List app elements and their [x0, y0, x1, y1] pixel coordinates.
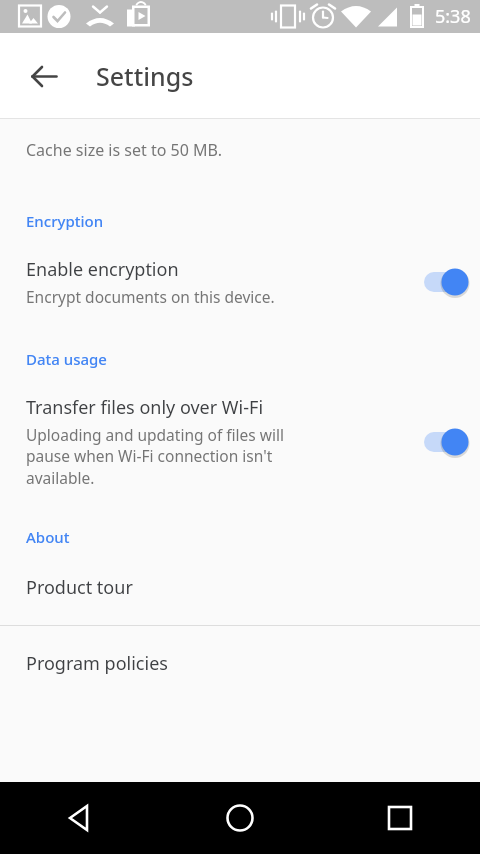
staticText: Cache size is set to 50 MB. — [26, 139, 223, 161]
button[interactable]: Toggle Enable encryption — [408, 258, 480, 306]
button[interactable]: Back — [22, 54, 67, 99]
staticText: Uploading and updating of files will pau… — [26, 424, 284, 489]
staticText: Encrypt documents on this device. — [26, 286, 275, 307]
button[interactable]: Transfer files only over Wi-Fi — [0, 395, 480, 489]
button[interactable]: Toggle Transfer files only over Wi-Fi — [408, 418, 480, 466]
staticText: Encryption — [26, 211, 104, 231]
button[interactable]: Home — [160, 782, 320, 854]
staticText: Transfer files only over Wi-Fi — [26, 395, 264, 420]
staticText: Enable encryption — [26, 257, 179, 282]
button[interactable]: Enable encryption — [0, 257, 480, 307]
button[interactable]: Product tour — [0, 575, 480, 600]
button[interactable]: Back — [0, 782, 160, 854]
staticText: Product tour — [26, 575, 133, 600]
button[interactable]: Recent apps — [320, 782, 480, 854]
staticText: About — [26, 527, 70, 547]
staticText: Program policies — [26, 651, 168, 676]
staticText: 5:38 — [435, 4, 471, 29]
staticText: Data usage — [26, 349, 107, 369]
button[interactable]: Program policies — [0, 651, 480, 676]
staticText: Settings — [96, 59, 194, 93]
